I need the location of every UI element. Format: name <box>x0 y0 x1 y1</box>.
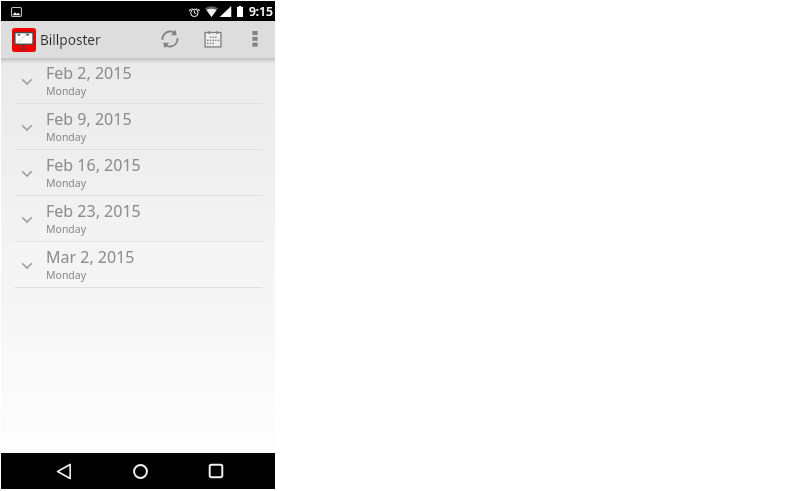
staticText: Monday <box>46 176 87 190</box>
button[interactable]: Billposter <box>1 21 109 58</box>
button[interactable]: Home <box>102 453 178 489</box>
staticText: Monday <box>46 130 87 144</box>
button[interactable]: Recent apps <box>178 453 254 489</box>
button[interactable]: Feb 23, 2015 <box>1 196 275 242</box>
staticText: Monday <box>46 268 87 282</box>
button[interactable]: Back <box>26 453 102 489</box>
staticText: Feb 16, 2015 <box>46 154 141 176</box>
button[interactable]: Feb 2, 2015 <box>1 58 275 104</box>
staticText: Billposter <box>40 30 101 49</box>
staticText: 9:15 <box>249 3 273 19</box>
staticText: Monday <box>46 84 87 98</box>
button[interactable]: Feb 16, 2015 <box>1 150 275 196</box>
button[interactable]: Feb 9, 2015 <box>1 104 275 150</box>
staticText: Monday <box>46 222 87 236</box>
button[interactable]: Calendar <box>194 21 231 58</box>
staticText: Mar 2, 2015 <box>46 246 135 268</box>
staticText: Feb 9, 2015 <box>46 108 132 130</box>
button[interactable]: More options <box>238 21 271 58</box>
staticText: Feb 23, 2015 <box>46 200 141 222</box>
staticText: Feb 2, 2015 <box>46 62 132 84</box>
button[interactable]: Refresh <box>151 21 188 58</box>
button[interactable]: Mar 2, 2015 <box>1 242 275 288</box>
